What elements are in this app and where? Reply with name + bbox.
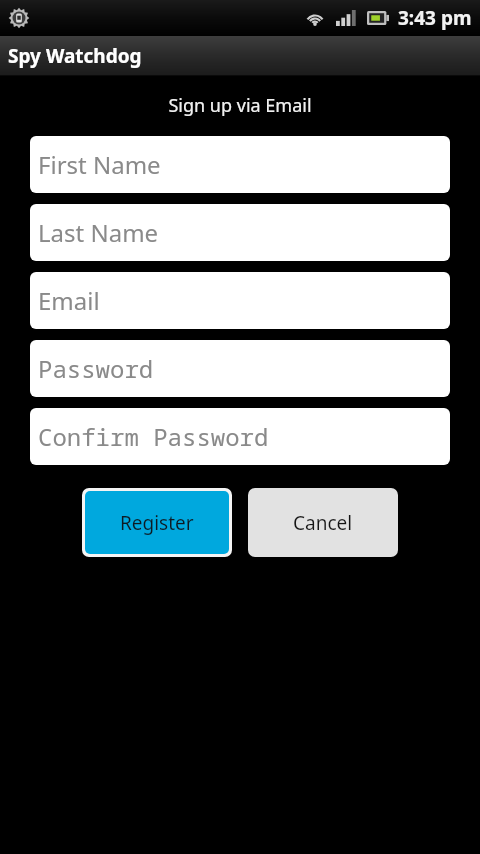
staticText: Sign up via Email — [0, 93, 480, 118]
button[interactable]: Email — [30, 272, 450, 329]
staticText: Last Name — [38, 216, 159, 249]
staticText: Spy Watchdog — [8, 43, 142, 69]
button[interactable]: First Name — [30, 136, 450, 193]
button[interactable]: Cancel — [248, 488, 398, 557]
staticText: Email — [38, 284, 100, 317]
button[interactable]: Password — [30, 340, 450, 397]
staticText: Password — [38, 352, 154, 385]
staticText: 3:43 pm — [398, 5, 472, 31]
staticText: Register — [120, 510, 194, 536]
staticText: Confirm Password — [38, 420, 269, 453]
staticText: Cancel — [293, 510, 353, 536]
button[interactable]: Confirm Password — [30, 408, 450, 465]
staticText: First Name — [38, 148, 161, 181]
button[interactable]: Last Name — [30, 204, 450, 261]
button[interactable]: Register — [85, 491, 229, 554]
